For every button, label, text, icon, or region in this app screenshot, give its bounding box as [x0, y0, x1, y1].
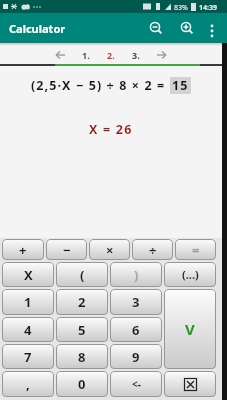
staticText: 3	[132, 293, 140, 311]
button[interactable]: ÷	[132, 239, 173, 260]
button[interactable]: 3	[110, 289, 162, 315]
staticText: ,	[26, 375, 30, 393]
button[interactable]: 4	[2, 317, 54, 342]
staticText: )	[134, 266, 139, 284]
button[interactable]: )	[110, 262, 162, 287]
button[interactable]: 6	[110, 317, 162, 342]
staticText: 9	[132, 348, 140, 366]
staticText: 8	[78, 348, 86, 366]
staticText: X = 26	[89, 121, 133, 138]
staticText: (...)	[182, 267, 199, 282]
staticText: Calculator	[9, 21, 66, 36]
button[interactable]: =	[175, 239, 216, 260]
staticText: X	[24, 266, 33, 284]
staticText: (2,5·X − 5) ÷ 8 × 2 =	[31, 77, 170, 94]
button[interactable]	[144, 15, 170, 41]
staticText: (	[80, 266, 85, 284]
staticText: 6	[132, 321, 140, 339]
staticText: 7	[24, 348, 32, 366]
staticText: 14:39	[199, 3, 217, 13]
button[interactable]: <-	[110, 371, 162, 397]
button[interactable]: X	[2, 262, 54, 287]
button[interactable]: 9	[110, 344, 162, 369]
staticText: 1	[24, 293, 32, 311]
button[interactable]: 8	[56, 344, 108, 369]
button[interactable]: 3.	[132, 49, 140, 61]
staticText: 15	[172, 77, 189, 94]
button[interactable]: 7	[2, 344, 54, 369]
button[interactable]: 2	[56, 289, 108, 315]
button[interactable]: V	[164, 289, 216, 369]
button[interactable]	[52, 48, 68, 62]
staticText: ÷	[149, 241, 157, 259]
button[interactable]	[154, 48, 170, 62]
button[interactable]: −	[46, 239, 87, 260]
button[interactable]: 1	[2, 289, 54, 315]
button[interactable]	[164, 371, 216, 397]
button[interactable]	[203, 18, 223, 38]
button[interactable]: 2.	[107, 49, 115, 61]
button[interactable]: (...)	[164, 262, 216, 287]
button[interactable]: 5	[56, 317, 108, 342]
button[interactable]: 1.	[82, 49, 90, 61]
staticText: 5	[78, 321, 86, 339]
button[interactable]	[175, 15, 201, 41]
staticText: ×	[106, 241, 114, 259]
button[interactable]: ×	[89, 239, 130, 260]
staticText: 0	[78, 375, 86, 393]
staticText: 4	[24, 321, 32, 339]
staticText: =	[192, 241, 200, 259]
staticText: <-	[132, 377, 141, 391]
staticText: 2	[78, 293, 86, 311]
button[interactable]: 0	[56, 371, 108, 397]
staticText: V	[185, 319, 195, 339]
button[interactable]: (	[56, 262, 108, 287]
staticText: −	[63, 241, 71, 259]
button[interactable]: +	[2, 239, 44, 260]
staticText: +	[19, 241, 27, 259]
button[interactable]: ,	[2, 371, 54, 397]
staticText: 83%	[174, 3, 188, 13]
